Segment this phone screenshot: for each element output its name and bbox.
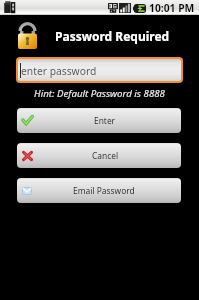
button[interactable]: Enter	[17, 108, 181, 133]
other: Enter	[22, 115, 33, 126]
staticText: enter password	[21, 64, 97, 78]
button[interactable]: Email Password	[17, 178, 181, 203]
staticText: Cancel	[92, 150, 119, 161]
staticText: Hint: Default Password is 8888	[0, 87, 199, 100]
staticText: 10:01 PM	[149, 1, 195, 15]
button[interactable]: Cancel	[17, 143, 181, 168]
other: Locked	[18, 22, 37, 49]
staticText: Enter	[94, 115, 116, 126]
staticText: Password Required	[55, 28, 170, 44]
staticText: Email Password	[73, 185, 135, 196]
other: Email Password	[22, 187, 32, 195]
other: Cancel	[22, 151, 33, 161]
button[interactable]: enter password	[18, 59, 181, 81]
